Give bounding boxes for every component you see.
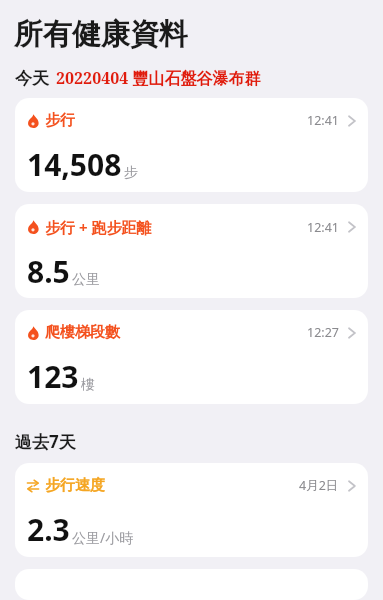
staticText: 2.3 xyxy=(27,509,70,550)
staticText: 12:41 xyxy=(307,112,339,129)
staticText: 20220404 豐山石盤谷瀑布群 xyxy=(56,67,261,89)
staticText: 4月2日 xyxy=(299,477,339,494)
staticText: 8.5 xyxy=(27,251,70,292)
button[interactable]: Walking speed xyxy=(15,463,368,557)
staticText: 今天 xyxy=(15,68,49,89)
staticText: 14,508 xyxy=(27,144,122,185)
staticText: 步行 + 跑步距離 xyxy=(45,217,152,237)
staticText: 公里 xyxy=(72,271,100,289)
staticText: 123 xyxy=(27,356,79,397)
staticText: 爬樓梯段數 xyxy=(45,323,120,342)
other: Open details xyxy=(348,114,356,128)
other: Open details xyxy=(348,326,356,340)
other: Open details xyxy=(348,220,356,234)
staticText: 樓 xyxy=(81,376,95,394)
button[interactable]: Activity xyxy=(15,310,368,404)
button[interactable]: Activity xyxy=(15,204,368,298)
staticText: 步 xyxy=(124,164,138,182)
other: Activity xyxy=(26,114,40,128)
staticText: 12:41 xyxy=(307,219,339,236)
other: Activity xyxy=(26,220,40,234)
other: Activity xyxy=(26,326,40,340)
staticText: 步行 xyxy=(45,111,75,130)
staticText: 公里/小時 xyxy=(72,528,134,547)
other: Walking speed xyxy=(26,479,40,493)
staticText: 12:27 xyxy=(307,324,339,341)
staticText: 過去7天 xyxy=(15,430,76,453)
button[interactable]: Activity xyxy=(15,98,368,192)
staticText: 所有健康資料 xyxy=(14,16,188,53)
staticText: 步行速度 xyxy=(45,476,105,495)
other: Open details xyxy=(348,479,356,493)
